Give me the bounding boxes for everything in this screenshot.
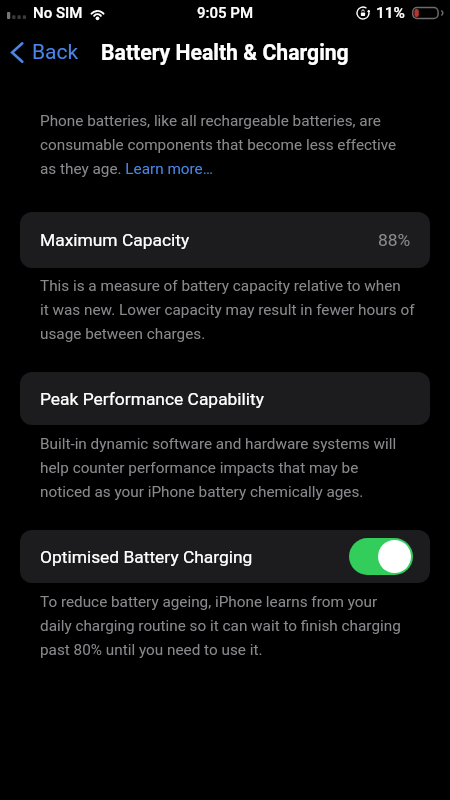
button[interactable]: Optimised Battery Charging (20, 530, 430, 583)
staticText: Optimised Battery Charging (40, 547, 253, 567)
button[interactable]: Optimised Battery Charging toggle, on (349, 538, 413, 575)
staticText: 88% (378, 230, 411, 250)
staticText: This is a measure of battery capacity re… (40, 277, 415, 343)
staticText: No SIM (33, 4, 83, 22)
button[interactable]: Back (10, 40, 79, 65)
staticText: 9:05 PM (197, 4, 254, 22)
staticText: Back (32, 40, 79, 65)
other: Rotation lock (356, 6, 370, 20)
staticText: Battery Health & Charging (101, 40, 349, 65)
staticText: Built-in dynamic software and hardware s… (40, 435, 397, 501)
button[interactable]: Maximum Capacity (20, 212, 430, 268)
staticText: To reduce battery ageing, iPhone learns … (40, 593, 401, 659)
staticText: 11% (376, 4, 406, 22)
button[interactable]: Peak Performance Capability (20, 372, 430, 425)
staticText: Maximum Capacity (40, 230, 190, 250)
staticText: Peak Performance Capability (40, 389, 264, 409)
staticText: Phone batteries, like all rechargeable b… (40, 112, 397, 178)
